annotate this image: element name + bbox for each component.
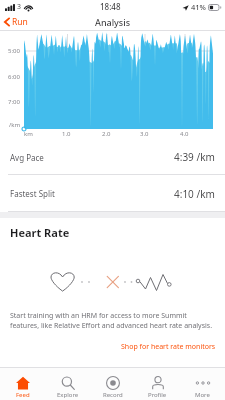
button[interactable]: Run [0,14,36,30]
staticText: 2.0 [102,130,111,138]
staticText: Run [12,16,28,28]
staticText: Analysis [95,16,131,28]
staticText: Feed [16,391,30,399]
staticText: km [24,130,33,138]
staticText: Record [103,391,123,399]
staticText: 4.0 [180,130,189,138]
button[interactable]: Shop for heart rate monitors [112,340,225,354]
staticText: Fastest Split [10,188,55,199]
button[interactable]: Record [90,368,135,400]
button[interactable]: More [180,368,225,400]
staticText: Avg Pace [10,152,44,163]
staticText: Explore [57,391,79,399]
button[interactable]: Explore [45,368,90,400]
button[interactable]: Profile [135,368,180,400]
staticText: 4:39 /km [174,150,215,164]
staticText: 1.0 [62,130,71,138]
button[interactable]: Fastest Split [0,175,225,212]
staticText: Start training with an HRM for access to… [10,311,215,331]
staticText: /km [9,121,21,129]
staticText: 18:48 [100,1,121,12]
button[interactable]: Feed [0,368,45,400]
button[interactable]: Avg Pace [0,139,225,175]
staticText: Profile [148,391,167,399]
staticText: 3 [17,2,22,12]
staticText: 4:10 /km [174,187,215,201]
staticText: Heart Rate [10,225,70,240]
staticText: 5:00 [8,47,20,55]
staticText: 7:00 [8,98,20,106]
staticText: 3.0 [140,130,149,138]
staticText: 41% [191,2,206,12]
staticText: 6:00 [8,73,20,81]
staticText: More [195,391,210,399]
